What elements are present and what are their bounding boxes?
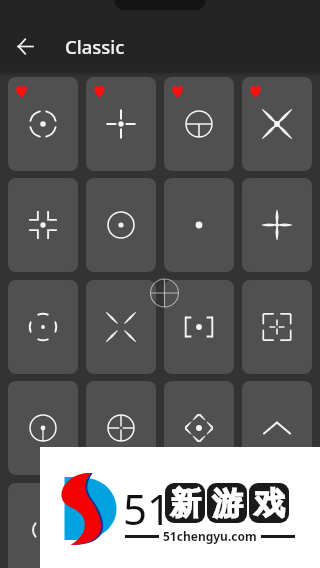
button[interactable]: Crosshair 9 bbox=[8, 280, 78, 374]
button[interactable]: Crosshair 1 bbox=[8, 77, 78, 171]
button[interactable]: Crosshair 8 bbox=[242, 178, 312, 272]
button[interactable]: Crosshair 17 bbox=[8, 483, 78, 568]
staticText: 51 bbox=[123, 480, 172, 537]
button[interactable]: Crosshair 13 bbox=[8, 381, 78, 475]
button[interactable]: Crosshair 2 bbox=[86, 77, 156, 171]
staticText: 游 bbox=[212, 484, 243, 523]
button[interactable]: Crosshair 20 bbox=[242, 483, 312, 568]
staticText: 51chengyu.com bbox=[163, 528, 257, 544]
button[interactable]: Crosshair 10 bbox=[86, 280, 156, 374]
button[interactable]: Crosshair 7 bbox=[164, 178, 234, 272]
staticText: Classic bbox=[65, 34, 125, 59]
button[interactable]: Crosshair 19 bbox=[164, 483, 234, 568]
button[interactable]: Crosshair 14 bbox=[86, 381, 156, 475]
staticText: 戏 bbox=[254, 484, 285, 523]
button[interactable]: Crosshair 15 bbox=[164, 381, 234, 475]
button[interactable]: Crosshair 11 bbox=[164, 280, 234, 374]
button[interactable]: Crosshair 6 bbox=[86, 178, 156, 272]
button[interactable]: Crosshair 4 bbox=[242, 77, 312, 171]
button[interactable]: Crosshair 3 bbox=[164, 77, 234, 171]
button[interactable]: Crosshair 12 bbox=[242, 280, 312, 374]
button[interactable]: Back bbox=[0, 23, 46, 69]
button[interactable]: Crosshair 5 bbox=[8, 178, 78, 272]
button[interactable]: Crosshair 18 bbox=[86, 483, 156, 568]
staticText: 新 bbox=[170, 484, 201, 523]
button[interactable]: Crosshair 16 bbox=[242, 381, 312, 475]
